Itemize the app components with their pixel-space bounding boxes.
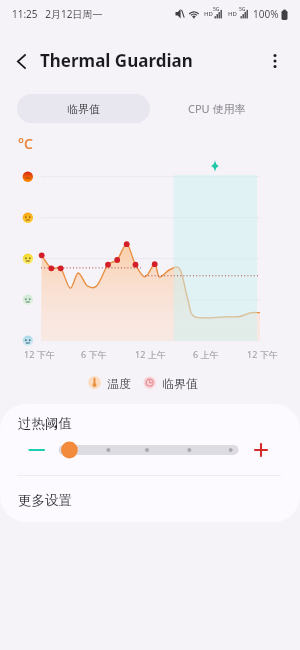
staticText: 更多设置 (18, 492, 72, 509)
staticText: 过热阈值 (18, 415, 72, 432)
staticText: 临界值 (67, 102, 100, 116)
staticText: 12 下午 (24, 348, 55, 360)
staticText: CPU 使用率 (188, 101, 246, 116)
staticText: 12 下午 (247, 348, 278, 360)
staticText: 11:25 2月12日周一 (12, 7, 103, 21)
button[interactable]: Increase threshold (246, 435, 276, 465)
button[interactable]: 更多设置 (0, 479, 300, 522)
staticText: HD (204, 10, 213, 18)
button[interactable]: 临界值 (17, 94, 150, 123)
staticText: 100% (253, 7, 279, 21)
button[interactable]: Decrease threshold (22, 435, 52, 465)
staticText: Thermal Guardian (40, 49, 193, 72)
staticText: HD (228, 10, 237, 18)
staticText: 温度 (107, 376, 131, 391)
button[interactable]: Back (8, 48, 34, 74)
staticText: 6 上午 (193, 348, 219, 360)
staticText: 6 下午 (81, 348, 107, 360)
button[interactable]: More options (260, 46, 290, 76)
staticText: °C (18, 134, 33, 153)
button[interactable]: CPU 使用率 (150, 94, 283, 123)
staticText: 5G (239, 6, 246, 13)
staticText: 12 上午 (135, 348, 166, 360)
staticText: 临界值 (162, 376, 198, 391)
staticText: 5G (213, 6, 220, 13)
